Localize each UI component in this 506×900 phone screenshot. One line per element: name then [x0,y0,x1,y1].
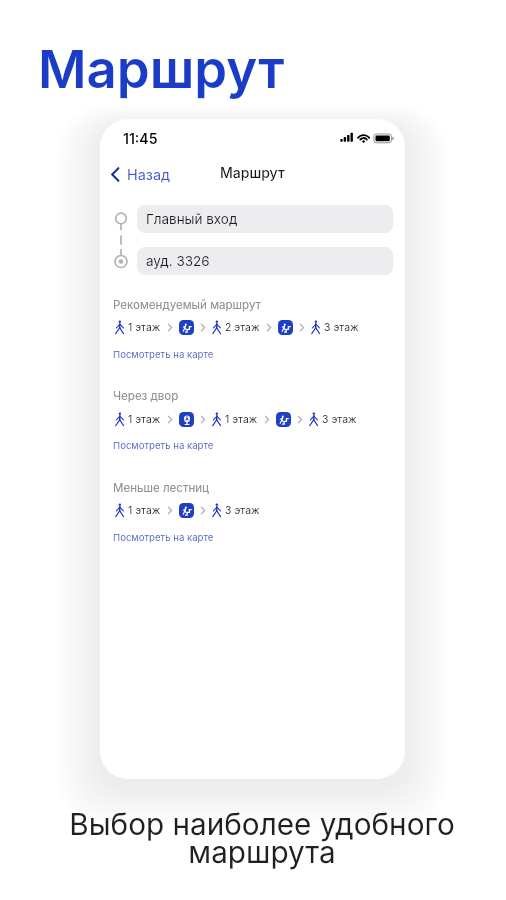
button[interactable]: 3 этаж [311,320,359,334]
staticText: 2 этаж [225,321,260,334]
staticText: Через двор [113,389,179,403]
staticText: Посмотреть на карте [113,532,214,544]
button[interactable]: Двор [179,412,194,427]
button[interactable]: Посмотреть на карте [113,532,214,544]
button[interactable]: Главный вход [137,205,393,233]
staticText: Рекомендуемый маршрут [113,298,261,312]
staticText: 3 этаж [225,504,260,517]
staticText: Маршрут [220,164,285,181]
button[interactable]: 1 этаж [115,503,161,517]
button[interactable]: Назад [111,161,171,187]
button[interactable]: 1 этаж [115,320,161,334]
button[interactable]: 1 этаж [212,412,258,426]
button[interactable]: ауд. 3326 [137,247,393,275]
button[interactable]: 3 этаж [309,412,357,426]
button[interactable]: Посмотреть на карте [113,440,214,452]
staticText: Главный вход [146,211,238,227]
button[interactable]: Посмотреть на карте [113,349,214,361]
staticText: 1 этаж [128,321,161,334]
staticText: ауд. 3326 [146,253,210,269]
staticText: 11:45 [123,130,158,147]
button[interactable]: 2 этаж [212,320,260,334]
button[interactable]: Лестница [179,503,194,518]
button[interactable]: Лестница [276,412,291,427]
staticText: Посмотреть на карте [113,440,214,452]
staticText: 3 этаж [324,321,359,334]
staticText: Посмотреть на карте [113,349,214,361]
staticText: Меньше лестниц [113,481,209,495]
staticText: Назад [127,166,171,183]
staticText: 1 этаж [225,413,258,426]
button[interactable]: 3 этаж [212,503,260,517]
button[interactable]: Лестница [179,320,194,335]
button[interactable]: Лестница [278,320,293,335]
button[interactable]: 1 этаж [115,412,161,426]
staticText: 1 этаж [128,413,161,426]
staticText: 3 этаж [322,413,357,426]
staticText: Маршрут [38,37,285,101]
staticText: Выбор наиболее удобного маршрута [69,806,455,870]
staticText: 1 этаж [128,504,161,517]
